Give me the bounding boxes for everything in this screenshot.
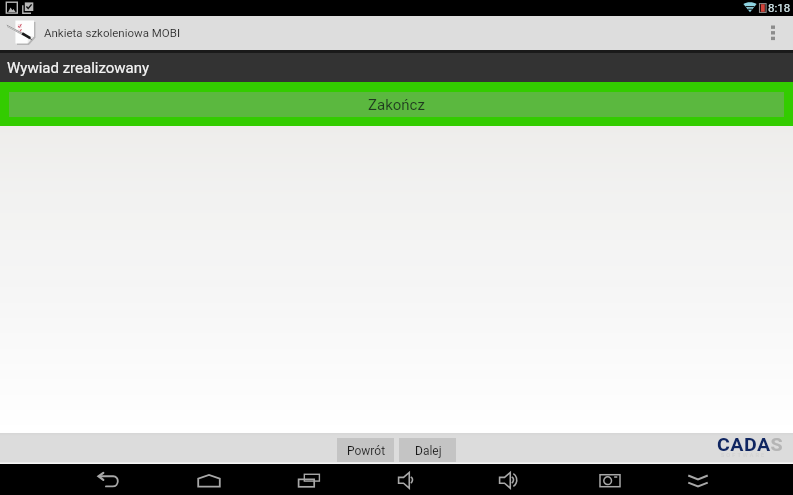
button[interactable]: Zakończ: [9, 92, 784, 117]
button[interactable]: Screenshot: [593, 464, 627, 495]
button[interactable]: More options: [753, 16, 793, 50]
staticText: Powrót: [347, 444, 386, 458]
button[interactable]: Home: [192, 464, 226, 495]
button[interactable]: Volume down: [392, 464, 426, 495]
staticText: CADAS: [717, 434, 783, 455]
staticText: Zakończ: [368, 96, 425, 114]
staticText: Wywiad zrealizowany: [7, 59, 150, 77]
staticText: 8:18: [768, 1, 791, 14]
staticText: Dalej: [415, 444, 442, 458]
button[interactable]: Recent apps: [292, 464, 326, 495]
button[interactable]: Dalej: [399, 438, 456, 462]
button[interactable]: Powrót: [337, 438, 394, 462]
button[interactable]: Volume up: [493, 464, 527, 495]
button[interactable]: Back: [91, 464, 125, 495]
button[interactable]: Hide navigation bar: [681, 464, 715, 495]
staticText: Ankieta szkoleniowa MOBI: [44, 26, 181, 39]
